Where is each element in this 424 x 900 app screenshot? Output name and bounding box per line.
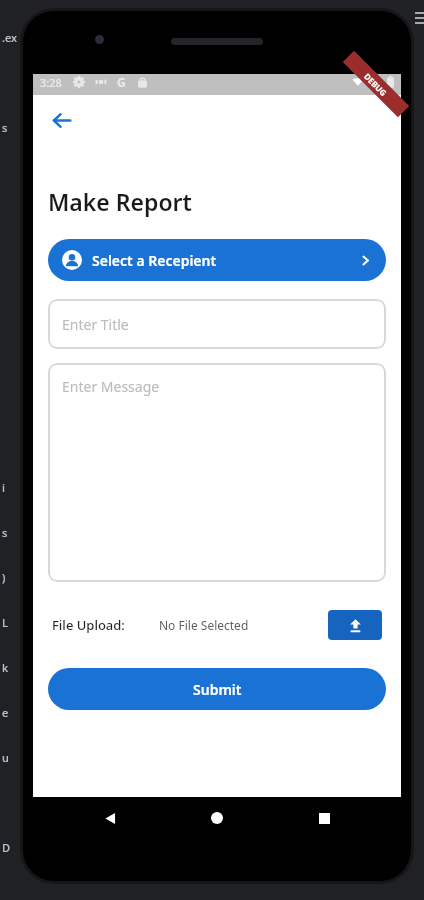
staticText: s bbox=[2, 525, 8, 540]
staticText: Enter Title bbox=[62, 315, 129, 334]
button[interactable]: Submit bbox=[48, 668, 386, 710]
staticText: Enter Message bbox=[62, 377, 160, 396]
button[interactable]: Back bbox=[39, 98, 83, 142]
button[interactable]: Select a Recepient bbox=[48, 239, 386, 281]
button[interactable]: Enter Title bbox=[48, 299, 386, 349]
staticText: L bbox=[2, 615, 8, 630]
button[interactable]: Home bbox=[197, 798, 237, 838]
staticText: .ex bbox=[2, 30, 18, 45]
staticText: k bbox=[2, 660, 9, 675]
staticText: Select a Recepient bbox=[92, 251, 217, 270]
staticText: G bbox=[117, 74, 126, 90]
staticText: DEBUG bbox=[362, 71, 389, 98]
staticText: e bbox=[2, 705, 9, 720]
staticText: File Upload: bbox=[52, 616, 125, 634]
button[interactable]: Upload file bbox=[328, 610, 382, 640]
staticText: u bbox=[2, 750, 9, 765]
button[interactable]: Back bbox=[90, 798, 130, 838]
button[interactable]: Recent apps bbox=[304, 798, 344, 838]
staticText: Submit bbox=[193, 680, 242, 699]
staticText: Make Report bbox=[48, 186, 192, 217]
staticText: ) bbox=[2, 570, 6, 585]
staticText: s bbox=[2, 120, 8, 135]
staticText: 3:28 bbox=[40, 75, 62, 90]
button[interactable]: Enter Message bbox=[48, 363, 386, 582]
staticText: D bbox=[2, 840, 11, 855]
staticText: No File Selected bbox=[159, 617, 249, 633]
staticText: i bbox=[2, 480, 5, 495]
